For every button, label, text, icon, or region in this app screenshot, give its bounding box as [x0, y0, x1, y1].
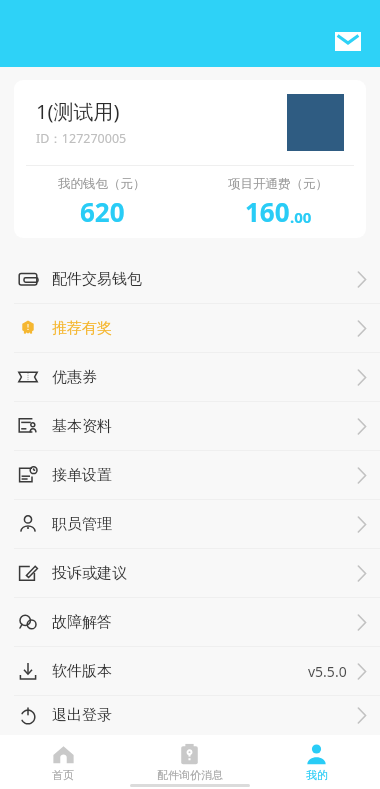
button[interactable]: 首页 [0, 735, 126, 789]
staticText: ID：127270005 [36, 130, 127, 147]
staticText: v5.5.0 [308, 662, 347, 681]
button[interactable]: 1(测试用) [14, 80, 366, 238]
button[interactable]: 退出登录 [0, 696, 380, 735]
staticText: 配件询价消息 [157, 768, 223, 782]
button[interactable]: 我的 [253, 735, 380, 789]
staticText: 退出登录 [52, 706, 112, 725]
button[interactable]: 配件询价消息 [126, 735, 253, 789]
staticText: 接单设置 [52, 466, 112, 485]
button[interactable]: 故障解答 [0, 598, 380, 646]
button[interactable]: Messages [328, 21, 368, 61]
button[interactable]: 投诉或建议 [0, 549, 380, 597]
button[interactable]: 基本资料 [0, 402, 380, 450]
staticText: 推荐有奖 [52, 319, 112, 338]
staticText: 首页 [52, 768, 74, 782]
staticText: 职员管理 [52, 515, 112, 534]
staticText: .00 [290, 207, 312, 227]
staticText: 软件版本 [52, 662, 112, 681]
button[interactable]: 优惠券 [0, 353, 380, 401]
staticText: 投诉或建议 [52, 564, 127, 583]
staticText: 160 [245, 194, 290, 229]
staticText: 项目开通费（元） [228, 176, 328, 192]
button[interactable]: 接单设置 [0, 451, 380, 499]
staticText: 基本资料 [52, 417, 112, 436]
staticText: 我的钱包（元） [58, 176, 146, 192]
staticText: 我的 [306, 768, 328, 782]
staticText: 优惠券 [52, 368, 97, 387]
button[interactable]: 推荐有奖 [0, 304, 380, 352]
button[interactable]: 软件版本 [0, 647, 380, 695]
button[interactable]: 职员管理 [0, 500, 380, 548]
staticText: 1(测试用) [36, 98, 120, 125]
staticText: 620 [80, 194, 125, 229]
staticText: 故障解答 [52, 613, 112, 632]
button[interactable]: 配件交易钱包 [0, 255, 380, 303]
staticText: 配件交易钱包 [52, 270, 142, 289]
